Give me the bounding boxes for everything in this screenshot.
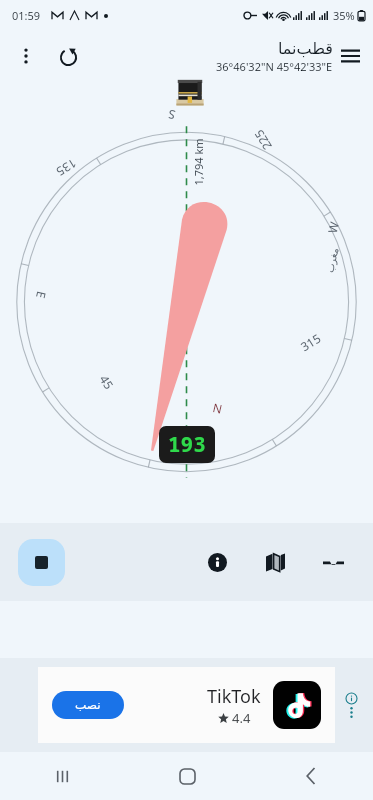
button[interactable]: Level [313,542,353,582]
button[interactable]: نصب [38,667,335,743]
staticText: N [211,399,225,417]
button[interactable]: Map [255,542,295,582]
button[interactable]: Info [197,542,237,582]
staticText: 35% [333,8,355,23]
button[interactable]: Calibrate [50,38,86,74]
staticText: 193 [168,430,206,459]
button[interactable]: Home [125,752,249,800]
staticText: 1,794 km [190,137,205,185]
staticText: W [324,219,342,235]
staticText: TikTok [207,684,261,709]
button[interactable]: نصب [52,691,124,719]
staticText: 36°46'32"N 45°42'33"E [216,59,333,74]
staticText: قطب‌نما [277,39,333,58]
button[interactable]: Back [249,752,373,800]
staticText: E [33,290,50,300]
staticText: 01:59 [12,8,41,23]
button[interactable]: Recents [0,752,125,800]
staticText: S [166,106,177,124]
staticText: 135 [53,156,80,180]
button[interactable]: More options [10,40,42,72]
staticText: 45 [96,372,117,392]
staticText: نصب [75,698,101,712]
button[interactable]: Stop [18,539,65,586]
staticText: 315 [297,330,324,354]
button[interactable]: Menu [333,39,367,73]
staticText: مغرب [324,246,342,274]
staticText: 4.4 [232,709,251,727]
staticText: 225 [250,127,275,153]
